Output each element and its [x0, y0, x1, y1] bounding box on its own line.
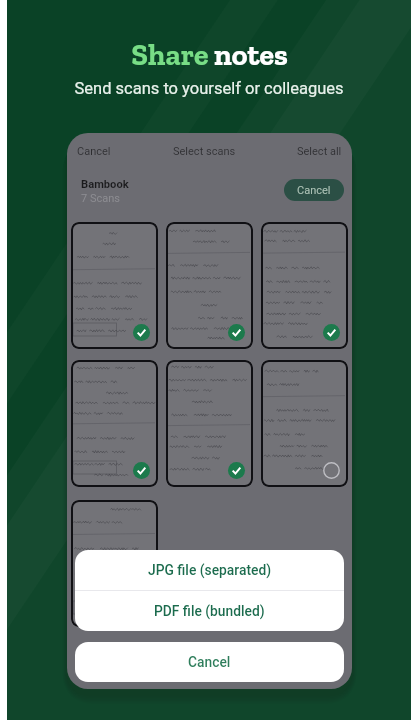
- button[interactable]: Cancel: [284, 179, 344, 201]
- staticText: Select scans: [173, 145, 236, 158]
- button[interactable]: [71, 500, 158, 627]
- button[interactable]: [71, 360, 158, 487]
- staticText: 7 Scans: [81, 192, 120, 205]
- button[interactable]: [261, 222, 348, 349]
- button[interactable]: [166, 360, 253, 487]
- button[interactable]: Cancel: [77, 141, 111, 162]
- staticText: Send scans to yourself or colleagues: [74, 79, 344, 98]
- button[interactable]: Cancel: [75, 642, 344, 682]
- staticText: Cancel: [297, 184, 331, 197]
- staticText: PDF file (bundled): [154, 603, 265, 619]
- button[interactable]: Select all: [297, 141, 342, 162]
- button[interactable]: JPG file (separated): [75, 550, 344, 590]
- button[interactable]: [261, 360, 348, 487]
- button[interactable]: PDF file (bundled): [75, 591, 344, 631]
- staticText: Cancel: [77, 145, 111, 158]
- staticText: Cancel: [188, 654, 231, 670]
- button[interactable]: [71, 222, 158, 349]
- button[interactable]: [166, 222, 253, 349]
- staticText: Select all: [297, 145, 342, 158]
- staticText: Share notes: [131, 37, 288, 73]
- staticText: Bambook: [81, 178, 129, 191]
- staticText: JPG file (separated): [148, 562, 272, 578]
